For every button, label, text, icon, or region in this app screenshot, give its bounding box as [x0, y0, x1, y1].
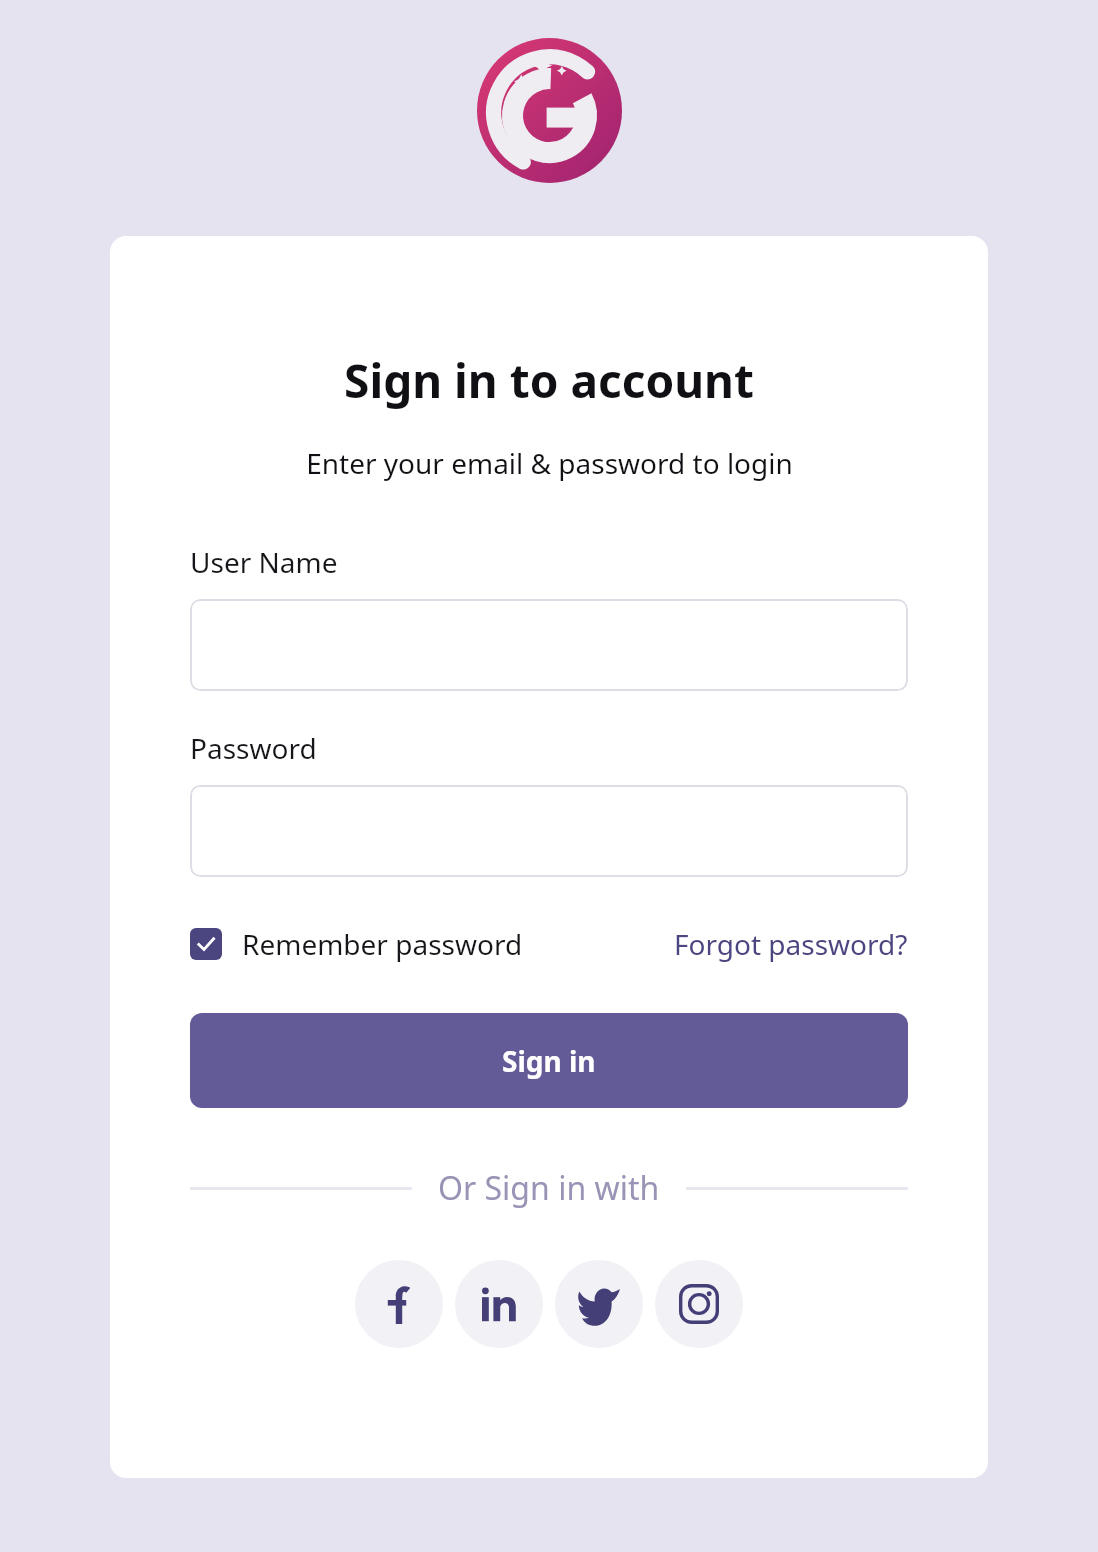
button[interactable]: Forgot password?	[674, 925, 908, 963]
staticText: Enter your email & password to login	[306, 444, 793, 482]
button[interactable]: Instagram	[655, 1260, 743, 1348]
button[interactable]	[190, 785, 908, 877]
staticText: Sign in to account	[344, 349, 754, 412]
button[interactable]: LinkedIn	[455, 1260, 543, 1348]
staticText: Sign in	[502, 1042, 596, 1080]
staticText: Remember password	[242, 925, 523, 963]
staticText: User Name	[190, 543, 338, 581]
staticText: Or Sign in with	[438, 1166, 660, 1210]
button[interactable]: Twitter	[555, 1260, 643, 1348]
staticText: Forgot password?	[674, 925, 908, 963]
button[interactable]: Facebook	[355, 1260, 443, 1348]
button[interactable]: Sign in	[190, 1013, 908, 1108]
button[interactable]	[190, 599, 908, 691]
button[interactable]: Remember password	[190, 925, 523, 963]
staticText: Password	[190, 729, 317, 767]
